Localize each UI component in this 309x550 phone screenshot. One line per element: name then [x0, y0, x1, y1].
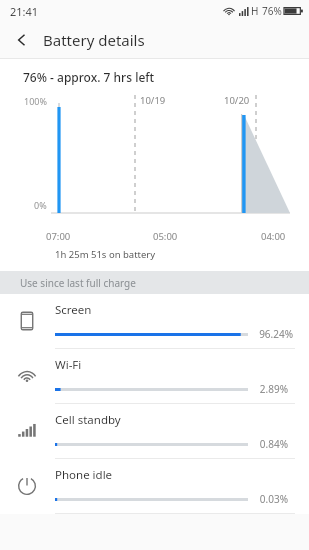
button[interactable]: Screen [0, 294, 309, 348]
button[interactable]: Cell standby [0, 404, 309, 458]
staticText: 96.24% [259, 327, 293, 341]
staticText: 0.84% [259, 437, 288, 451]
staticText: Battery details [43, 30, 145, 50]
staticText: 10/20 [224, 94, 250, 107]
staticText: Wi-Fi [55, 357, 82, 373]
staticText: 10/19 [140, 94, 166, 107]
staticText: 0.03% [259, 492, 288, 506]
staticText: 04:00 [261, 230, 286, 243]
staticText: 76% [262, 4, 282, 18]
button[interactable]: Wi-Fi [0, 349, 309, 403]
staticText: 76% - approx. 7 hrs left [23, 69, 155, 85]
staticText: Phone idle [55, 467, 113, 483]
staticText: 0% [34, 199, 47, 211]
staticText: Use since last full charge [20, 276, 136, 290]
staticText: 100% [24, 95, 47, 107]
button[interactable]: Phone idle [0, 459, 309, 513]
staticText: 07:00 [46, 230, 71, 243]
staticText: 1h 25m 51s on battery [55, 248, 156, 261]
staticText: Cell standby [55, 412, 121, 428]
staticText: H [251, 4, 259, 18]
staticText: 05:00 [153, 230, 178, 243]
staticText: 2.89% [259, 382, 288, 396]
button[interactable]: Back [6, 24, 38, 56]
staticText: 21:41 [10, 4, 39, 19]
staticText: Screen [55, 302, 92, 318]
